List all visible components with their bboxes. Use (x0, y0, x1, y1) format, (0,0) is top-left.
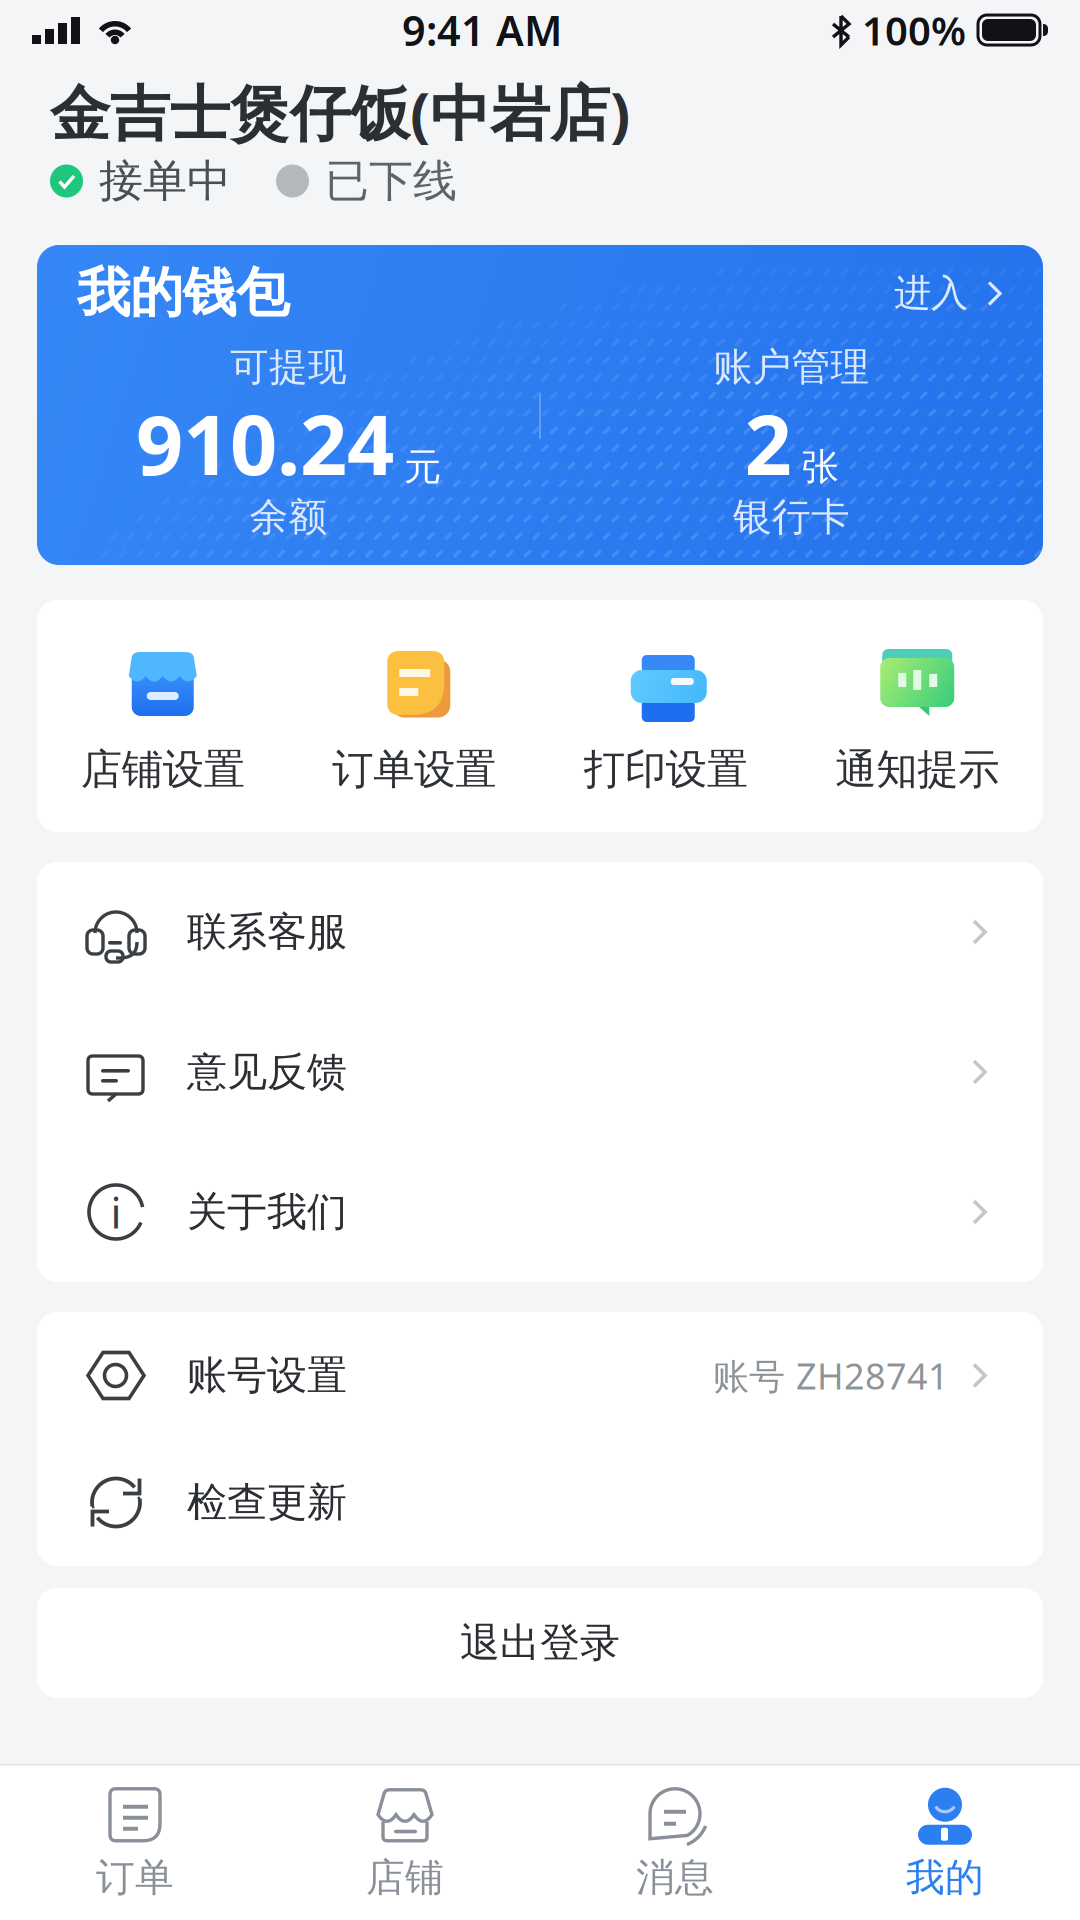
staticText: 消息 (636, 1854, 714, 1901)
staticText: 元 (404, 444, 441, 490)
button[interactable]: 店铺设置 (37, 600, 288, 832)
staticText: 订单设置 (332, 744, 496, 795)
staticText: 账号 ZH28741 (713, 1352, 949, 1399)
staticText: 账号设置 (187, 1351, 347, 1400)
button[interactable]: i (37, 1142, 1043, 1282)
staticText: 检查更新 (187, 1478, 347, 1527)
staticText: 店铺 (366, 1854, 444, 1901)
staticText: 余额 (249, 493, 327, 541)
staticText: 金吉士煲仔饭(中岩店) (50, 72, 630, 152)
button[interactable]: 消息 (540, 1786, 810, 1901)
button[interactable]: 我的 (810, 1786, 1080, 1901)
button[interactable]: 检查更新 (37, 1439, 1043, 1566)
staticText: 意见反馈 (187, 1047, 347, 1096)
staticText: i (110, 1184, 121, 1240)
button[interactable]: 联系客服 (37, 862, 1043, 1002)
button[interactable]: 订单 (0, 1786, 270, 1901)
staticText: 910.24 (136, 388, 394, 498)
staticText: 我的 (906, 1854, 984, 1901)
button[interactable]: 账号设置 (37, 1312, 1043, 1439)
staticText: 银行卡 (733, 493, 850, 541)
button[interactable]: 意见反馈 (37, 1002, 1043, 1142)
staticText: 通知提示 (835, 744, 999, 795)
button[interactable]: 退出登录 (37, 1588, 1043, 1698)
button[interactable]: 接单中 (50, 154, 231, 208)
button[interactable]: 我的钱包 (37, 245, 1043, 565)
staticText: 店铺设置 (81, 744, 245, 795)
staticText: 已下线 (325, 154, 457, 208)
staticText: 退出登录 (460, 1618, 620, 1667)
button[interactable]: 已下线 (276, 154, 457, 208)
staticText: 100% (862, 3, 966, 56)
button[interactable]: 打印设置 (540, 600, 791, 832)
button[interactable]: 店铺 (270, 1786, 540, 1901)
staticText: 我的钱包 (77, 260, 289, 326)
staticText: 接单中 (99, 154, 231, 208)
staticText: 关于我们 (187, 1187, 347, 1236)
staticText: 可提现 (230, 343, 347, 391)
staticText: 订单 (96, 1854, 174, 1901)
staticText: 联系客服 (187, 907, 347, 956)
staticText: 2 (744, 388, 791, 498)
staticText: 进入 (894, 270, 968, 316)
button[interactable]: 订单设置 (288, 600, 540, 832)
staticText: 账户管理 (713, 343, 869, 391)
staticText: 9:41 AM (402, 3, 562, 57)
staticText: 打印设置 (584, 744, 748, 795)
button[interactable]: 通知提示 (791, 600, 1043, 832)
staticText: 张 (801, 444, 838, 490)
